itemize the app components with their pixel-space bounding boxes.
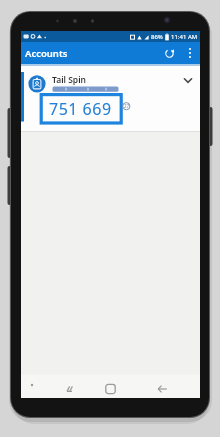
staticText: 11:41 AM [171, 33, 198, 41]
staticText: 27 [124, 103, 130, 109]
staticText: 86% [151, 33, 163, 41]
staticText: Accounts [25, 47, 68, 60]
button[interactable] [156, 383, 169, 395]
button[interactable] [184, 45, 196, 61]
staticText: Tail Spin [52, 74, 86, 86]
button[interactable] [104, 383, 117, 395]
button[interactable] [26, 379, 38, 391]
button[interactable] [63, 383, 76, 395]
button[interactable]: Tail Spin [21, 66, 200, 131]
button[interactable] [161, 45, 177, 61]
staticText: 751 669 [49, 98, 112, 120]
